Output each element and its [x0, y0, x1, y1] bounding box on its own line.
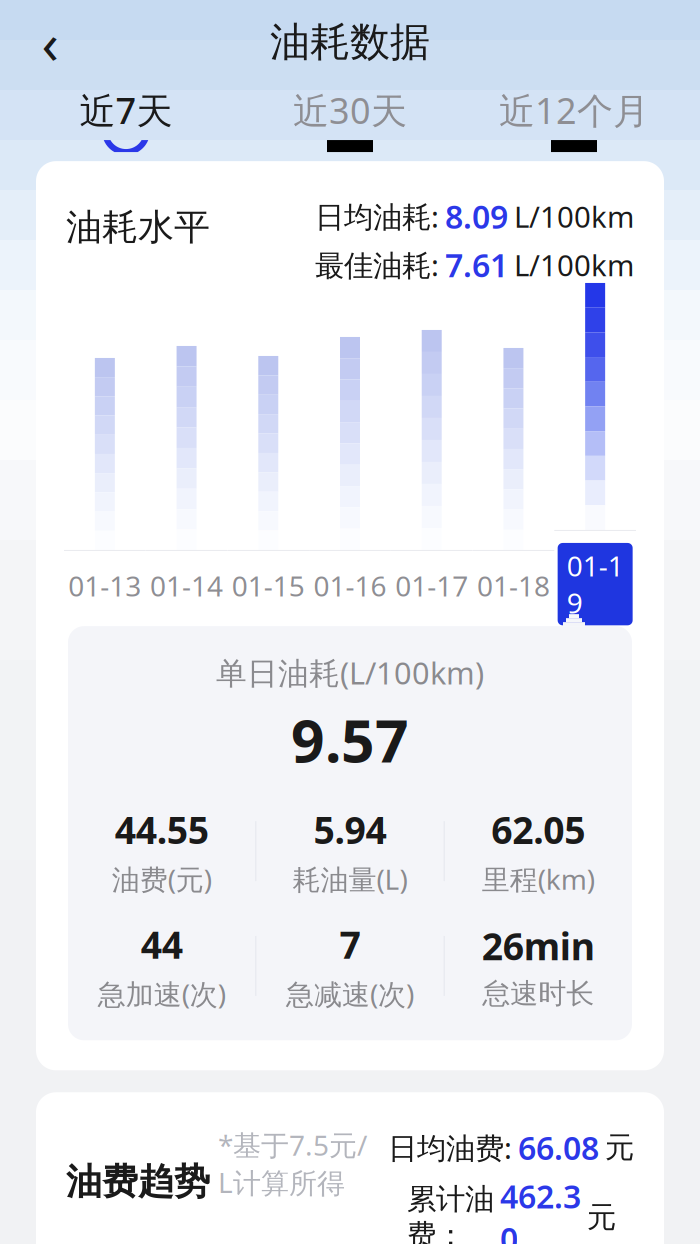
staticText: 日均油耗: [315, 197, 439, 236]
staticText: 01-13 [68, 567, 141, 604]
staticText: 01-14 [150, 567, 223, 604]
staticText: 01-16 [313, 567, 386, 604]
staticText: 7.61 [445, 244, 508, 286]
staticText: 里程(km) [482, 860, 595, 898]
staticText: 66.08 [518, 1126, 599, 1169]
staticText: 油费趋势 [66, 1160, 210, 1204]
staticText: 01-18 [477, 567, 550, 604]
staticText: ‹ [41, 5, 58, 79]
staticText: 单日油耗(L/100km) [216, 652, 484, 693]
staticText: 近7天 [79, 86, 172, 134]
staticText: 耗油量(L) [292, 860, 407, 898]
staticText: 怠速时长 [482, 976, 594, 1011]
button[interactable]: 近12个月 [462, 80, 686, 158]
staticText: 5.94 [313, 805, 386, 854]
staticText: 9.57 [291, 701, 409, 779]
staticText: L/100km [514, 245, 634, 284]
staticText: 26min [482, 921, 595, 970]
staticText: 近30天 [293, 86, 407, 134]
button[interactable]: 近30天 [238, 80, 462, 158]
staticText: 8.09 [445, 195, 508, 238]
staticText: 44.55 [115, 805, 209, 854]
staticText: 累计油费： [407, 1181, 494, 1244]
staticText: 元 [605, 1129, 634, 1165]
staticText: 日均油费: [388, 1128, 512, 1167]
staticText: 7 [339, 919, 360, 969]
button[interactable]: 返回 [22, 14, 78, 70]
staticText: 元 [587, 1199, 616, 1235]
staticText: 油费(元) [112, 860, 212, 898]
staticText: 62.05 [491, 805, 585, 854]
staticText: 01-15 [232, 567, 305, 604]
staticText: *基于7.5元/L计算所得 [218, 1126, 367, 1201]
button[interactable]: 近7天 [14, 80, 238, 158]
staticText: 急减速(次) [286, 975, 414, 1012]
staticText: 油耗水平 [66, 205, 210, 249]
staticText: 01-19 [567, 547, 624, 621]
staticText: 油耗数据 [270, 18, 430, 67]
staticText: 44 [141, 919, 183, 969]
staticText: 01-17 [395, 567, 468, 604]
staticText: L/100km [514, 197, 634, 236]
staticText: 462.30 [500, 1175, 581, 1244]
staticText: 最佳油耗: [315, 245, 439, 284]
staticText: 急加速(次) [98, 975, 226, 1012]
staticText: 近12个月 [499, 86, 649, 134]
